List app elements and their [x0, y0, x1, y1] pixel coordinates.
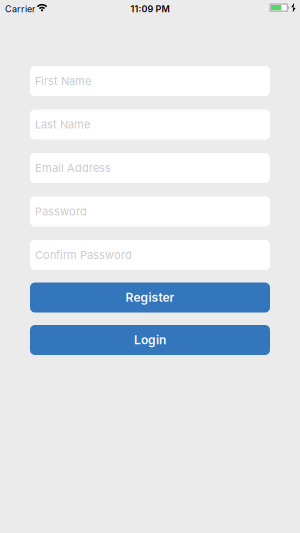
staticText: First Name [35, 74, 91, 87]
button[interactable]: First Name [30, 66, 270, 96]
staticText: Email Address [35, 161, 111, 174]
button[interactable]: Confirm Password [30, 240, 270, 270]
staticText: Register [125, 290, 174, 305]
staticText: Carrier [5, 4, 35, 14]
staticText: 11:09 PM [130, 4, 169, 14]
button[interactable]: Password [30, 196, 270, 226]
button[interactable]: Email Address [30, 153, 270, 183]
staticText: Last Name [35, 118, 90, 131]
button[interactable]: Login [30, 325, 270, 355]
staticText: Password [35, 205, 87, 218]
button[interactable]: Register [30, 282, 270, 312]
staticText: Confirm Password [35, 248, 132, 261]
staticText: Login [134, 333, 166, 347]
button[interactable]: Last Name [30, 109, 270, 139]
